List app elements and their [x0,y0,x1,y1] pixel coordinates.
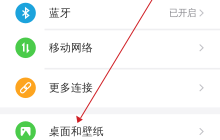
staticText: 移动网络 [49,41,93,54]
button[interactable]: 移动网络 [0,28,220,67]
staticText: 桌面和壁纸 [49,125,104,138]
button[interactable]: 蓝牙 [0,0,220,32]
button[interactable]: 桌面和壁纸 [0,112,220,140]
staticText: 更多连接 [49,81,93,94]
staticText: 已开启 [169,7,196,19]
button[interactable]: 更多连接 [0,68,220,107]
staticText: 蓝牙 [49,6,71,19]
